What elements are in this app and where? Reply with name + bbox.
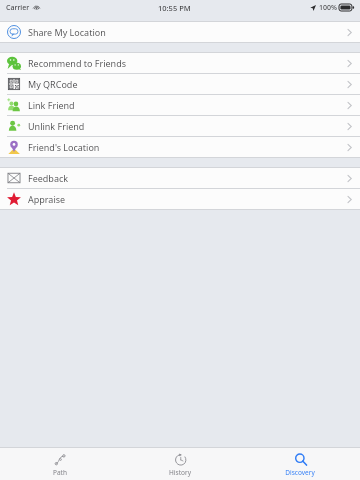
staticText: 10:55 PM (158, 3, 191, 13)
staticText: Carrier (6, 3, 30, 13)
staticText: Appraise (28, 193, 66, 205)
button[interactable]: Share My Location (0, 22, 360, 42)
button[interactable]: Discovery (240, 448, 360, 480)
staticText: Recommend to Friends (28, 57, 127, 69)
button[interactable]: Appraise (0, 189, 360, 209)
staticText: Unlink Friend (28, 120, 85, 132)
button[interactable]: History (120, 448, 240, 480)
staticText: Share My Location (28, 26, 106, 38)
staticText: Path (53, 468, 67, 477)
button[interactable]: Recommend to Friends (0, 53, 360, 73)
button[interactable]: Link Friend (0, 95, 360, 115)
staticText: Discovery (285, 468, 315, 477)
staticText: My QRCode (28, 78, 78, 90)
button[interactable]: Unlink Friend (0, 116, 360, 136)
button[interactable]: My QRCode (0, 74, 360, 94)
button[interactable]: Feedback (0, 168, 360, 188)
staticText: Friend's Location (28, 141, 100, 153)
staticText: 100% (319, 3, 337, 13)
staticText: Link Friend (28, 99, 75, 111)
staticText: History (169, 468, 191, 477)
button[interactable]: Path (0, 448, 120, 480)
staticText: Feedback (28, 172, 69, 184)
button[interactable]: Friend's Location (0, 137, 360, 157)
